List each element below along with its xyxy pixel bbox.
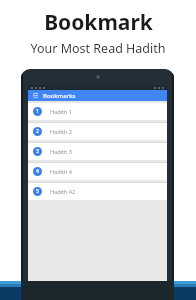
staticText: 4: [36, 168, 39, 175]
staticText: Hadith 42: [50, 188, 76, 195]
staticText: Your Most Read Hadith: [30, 40, 166, 57]
button[interactable]: Open navigation menu: [28, 90, 167, 101]
button[interactable]: Open navigation menu: [32, 92, 39, 99]
staticText: 5: [36, 188, 39, 195]
button[interactable]: 1: [28, 103, 167, 120]
button[interactable]: 5: [28, 183, 167, 200]
staticText: Hadith 2: [50, 128, 72, 135]
staticText: Hadith 1: [50, 108, 72, 115]
button[interactable]: 2: [28, 123, 167, 140]
staticText: 3: [36, 148, 39, 155]
button[interactable]: 4: [28, 163, 167, 180]
button[interactable]: 3: [28, 143, 167, 160]
staticText: 1: [36, 108, 39, 115]
staticText: Bookmark: [44, 8, 153, 37]
staticText: Hadith 3: [50, 148, 72, 155]
staticText: Hadith 4: [50, 168, 72, 175]
staticText: Bookmarks: [43, 92, 76, 100]
staticText: 2: [36, 128, 39, 135]
